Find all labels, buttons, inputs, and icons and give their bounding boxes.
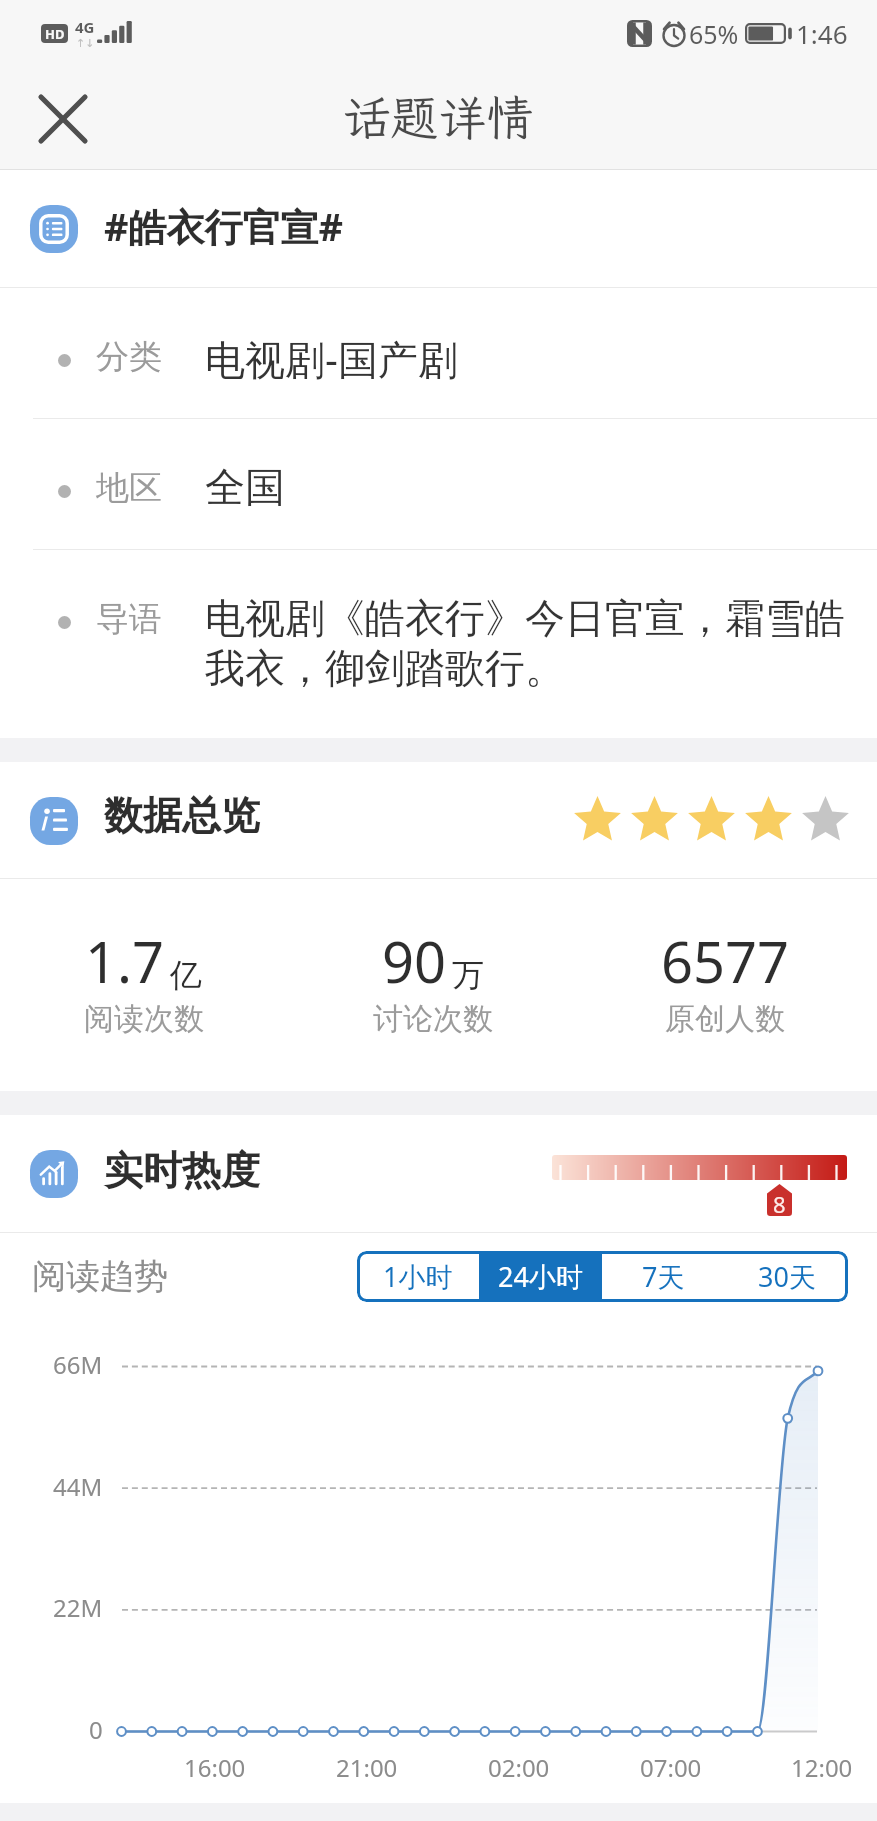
- button[interactable]: Close: [14, 71, 108, 165]
- staticText: 66M: [53, 1348, 103, 1381]
- staticText: 4G: [75, 17, 95, 37]
- button[interactable]: 1小时: [357, 1251, 479, 1302]
- staticText: 讨论次数: [373, 1000, 493, 1038]
- staticText: 7天: [642, 1258, 685, 1295]
- staticText: 电视剧-国产剧: [205, 331, 458, 386]
- staticText: 全国: [205, 462, 285, 512]
- staticText: 亿: [170, 955, 202, 995]
- staticText: 02:00: [488, 1751, 550, 1784]
- staticText: 24小时: [498, 1258, 583, 1295]
- staticText: 0: [89, 1713, 103, 1746]
- staticText: 22M: [53, 1591, 103, 1624]
- staticText: 阅读次数: [84, 1000, 204, 1038]
- staticText: 数据总览: [104, 791, 260, 840]
- staticText: #皓衣行官宣#: [104, 200, 344, 252]
- staticText: 话题详情: [342, 85, 535, 148]
- staticText: 07:00: [640, 1751, 702, 1784]
- staticText: 原创人数: [665, 1000, 785, 1038]
- staticText: 1:46: [796, 16, 848, 51]
- staticText: 1.7: [85, 923, 165, 999]
- staticText: 阅读趋势: [32, 1255, 168, 1298]
- staticText: 30天: [758, 1258, 816, 1295]
- staticText: 16:00: [184, 1751, 246, 1784]
- staticText: ↑↓: [76, 37, 95, 50]
- staticText: 6577: [661, 923, 790, 999]
- staticText: 8: [773, 1189, 786, 1219]
- staticText: 电视剧《皓衣行》今日官宣，霜雪皓: [205, 593, 845, 643]
- staticText: 90: [382, 923, 447, 999]
- staticText: 导语: [96, 598, 162, 640]
- button[interactable]: 30天: [725, 1251, 848, 1302]
- staticText: 分类: [96, 336, 162, 378]
- staticText: 21:00: [336, 1751, 398, 1784]
- staticText: 44M: [53, 1470, 103, 1503]
- staticText: 万: [452, 955, 484, 995]
- staticText: HD: [45, 25, 65, 43]
- staticText: 65%: [689, 17, 739, 51]
- staticText: 地区: [96, 467, 162, 509]
- button[interactable]: 7天: [602, 1251, 725, 1302]
- staticText: 1小时: [383, 1258, 453, 1295]
- staticText: 我衣，御剑踏歌行。: [205, 643, 565, 693]
- button[interactable]: 24小时: [479, 1251, 602, 1302]
- staticText: 12:00: [791, 1751, 853, 1784]
- staticText: 实时热度: [104, 1146, 260, 1195]
